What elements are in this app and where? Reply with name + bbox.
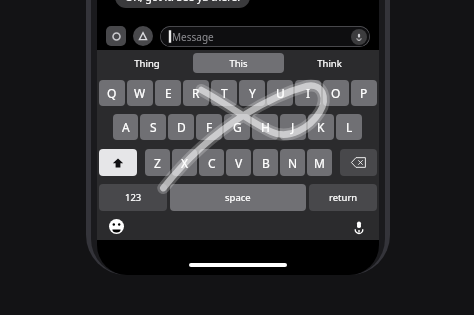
- button[interactable]: J: [280, 114, 306, 140]
- button[interactable]: Y: [239, 80, 265, 106]
- staticText: S: [150, 119, 157, 135]
- staticText: H: [261, 119, 270, 135]
- staticText: OK, got it. See ya there.: [125, 0, 240, 4]
- button[interactable]: Think: [284, 53, 375, 73]
- button[interactable]: Emoji: [109, 219, 124, 234]
- staticText: Q: [107, 85, 117, 101]
- button[interactable]: M: [307, 149, 332, 176]
- button[interactable]: Thing: [101, 53, 193, 73]
- button[interactable]: Q: [99, 80, 125, 106]
- staticText: W: [134, 85, 146, 101]
- staticText: J: [291, 119, 295, 135]
- button[interactable]: G: [224, 114, 250, 140]
- staticText: return: [329, 191, 358, 204]
- staticText: Think: [317, 57, 342, 70]
- button[interactable]: K: [308, 114, 334, 140]
- button[interactable]: R: [183, 80, 209, 106]
- button[interactable]: I: [295, 80, 321, 106]
- staticText: Message: [172, 30, 214, 44]
- button[interactable]: P: [351, 80, 377, 106]
- button[interactable]: L: [336, 114, 362, 140]
- staticText: R: [192, 85, 200, 101]
- staticText: L: [346, 119, 353, 135]
- button[interactable]: Dictate: [351, 29, 367, 45]
- button[interactable]: U: [267, 80, 293, 106]
- button[interactable]: V: [226, 149, 251, 176]
- button[interactable]: Shift: [99, 149, 137, 176]
- button[interactable]: N: [280, 149, 305, 176]
- button[interactable]: Message: [160, 26, 370, 47]
- staticText: V: [235, 155, 243, 171]
- button[interactable]: Dictation: [351, 219, 366, 234]
- staticText: F: [206, 119, 213, 135]
- staticText: X: [181, 155, 189, 171]
- staticText: N: [288, 155, 298, 171]
- button[interactable]: C: [199, 149, 224, 176]
- staticText: U: [276, 85, 285, 101]
- button[interactable]: B: [253, 149, 278, 176]
- staticText: space: [225, 191, 251, 204]
- staticText: I: [306, 85, 311, 101]
- button[interactable]: OK, got it. See ya there.: [115, 0, 250, 8]
- staticText: A: [122, 119, 130, 135]
- button[interactable]: 123: [99, 184, 167, 211]
- button[interactable]: This: [193, 53, 284, 73]
- staticText: P: [360, 85, 368, 101]
- staticText: Y: [249, 85, 256, 101]
- staticText: B: [262, 155, 270, 171]
- staticText: T: [221, 85, 228, 101]
- staticText: O: [331, 85, 341, 101]
- button[interactable]: S: [140, 114, 166, 140]
- button[interactable]: W: [127, 80, 153, 106]
- staticText: This: [229, 57, 248, 70]
- staticText: E: [165, 85, 172, 101]
- button[interactable]: Camera: [106, 26, 126, 46]
- button[interactable]: Z: [145, 149, 170, 176]
- button[interactable]: A: [113, 114, 138, 140]
- staticText: C: [208, 155, 216, 171]
- staticText: Thing: [134, 57, 160, 70]
- staticText: G: [233, 119, 242, 135]
- button[interactable]: App Store: [133, 26, 153, 46]
- button[interactable]: O: [323, 80, 349, 106]
- button[interactable]: H: [252, 114, 278, 140]
- button[interactable]: F: [196, 114, 222, 140]
- button[interactable]: T: [211, 80, 237, 106]
- button[interactable]: space: [170, 184, 306, 211]
- staticText: Z: [154, 155, 161, 171]
- staticText: 123: [125, 191, 142, 204]
- staticText: D: [177, 119, 186, 135]
- button[interactable]: D: [168, 114, 194, 140]
- button[interactable]: Backspace: [340, 149, 377, 176]
- button[interactable]: X: [172, 149, 197, 176]
- staticText: M: [314, 155, 325, 171]
- staticText: K: [317, 119, 325, 135]
- button[interactable]: return: [309, 184, 377, 211]
- button[interactable]: E: [155, 80, 181, 106]
